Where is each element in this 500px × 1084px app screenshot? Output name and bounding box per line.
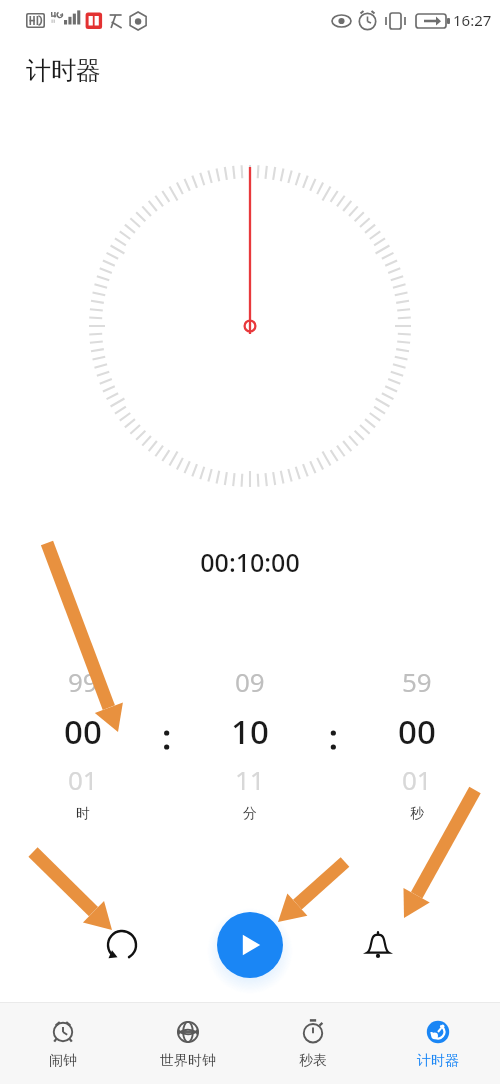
staticText: 时 bbox=[76, 805, 90, 823]
button[interactable]: 99 bbox=[0, 664, 166, 840]
staticText: 11 bbox=[235, 762, 265, 797]
staticText: 世界时钟 bbox=[160, 1052, 216, 1070]
button[interactable]: Start bbox=[217, 912, 283, 978]
staticText: 01 bbox=[402, 762, 432, 797]
button[interactable]: 秒表 bbox=[250, 1003, 375, 1084]
staticText: 16:27 bbox=[453, 10, 492, 30]
staticText: 00 bbox=[64, 709, 102, 754]
button[interactable]: Ringtone bbox=[352, 919, 404, 971]
staticText: 计时器 bbox=[26, 55, 101, 86]
staticText: 00 bbox=[398, 709, 436, 754]
staticText: 00:10:00 bbox=[200, 545, 300, 579]
staticText: 闹钟 bbox=[49, 1052, 77, 1070]
staticText: 计时器 bbox=[417, 1052, 459, 1070]
staticText: 99 bbox=[68, 664, 98, 699]
staticText: 09 bbox=[235, 664, 265, 699]
button[interactable]: 闹钟 bbox=[0, 1003, 125, 1084]
button[interactable]: 计时器 bbox=[375, 1003, 500, 1084]
staticText: 分 bbox=[243, 805, 257, 823]
staticText: 秒 bbox=[410, 805, 424, 823]
staticText: 10 bbox=[231, 709, 269, 754]
staticText: 秒表 bbox=[299, 1052, 327, 1070]
button[interactable]: 世界时钟 bbox=[125, 1003, 250, 1084]
button[interactable]: 09 bbox=[166, 664, 333, 840]
staticText: 01 bbox=[68, 762, 98, 797]
button[interactable]: 59 bbox=[333, 664, 500, 840]
staticText: 59 bbox=[402, 664, 432, 699]
button[interactable]: Reset bbox=[96, 919, 148, 971]
